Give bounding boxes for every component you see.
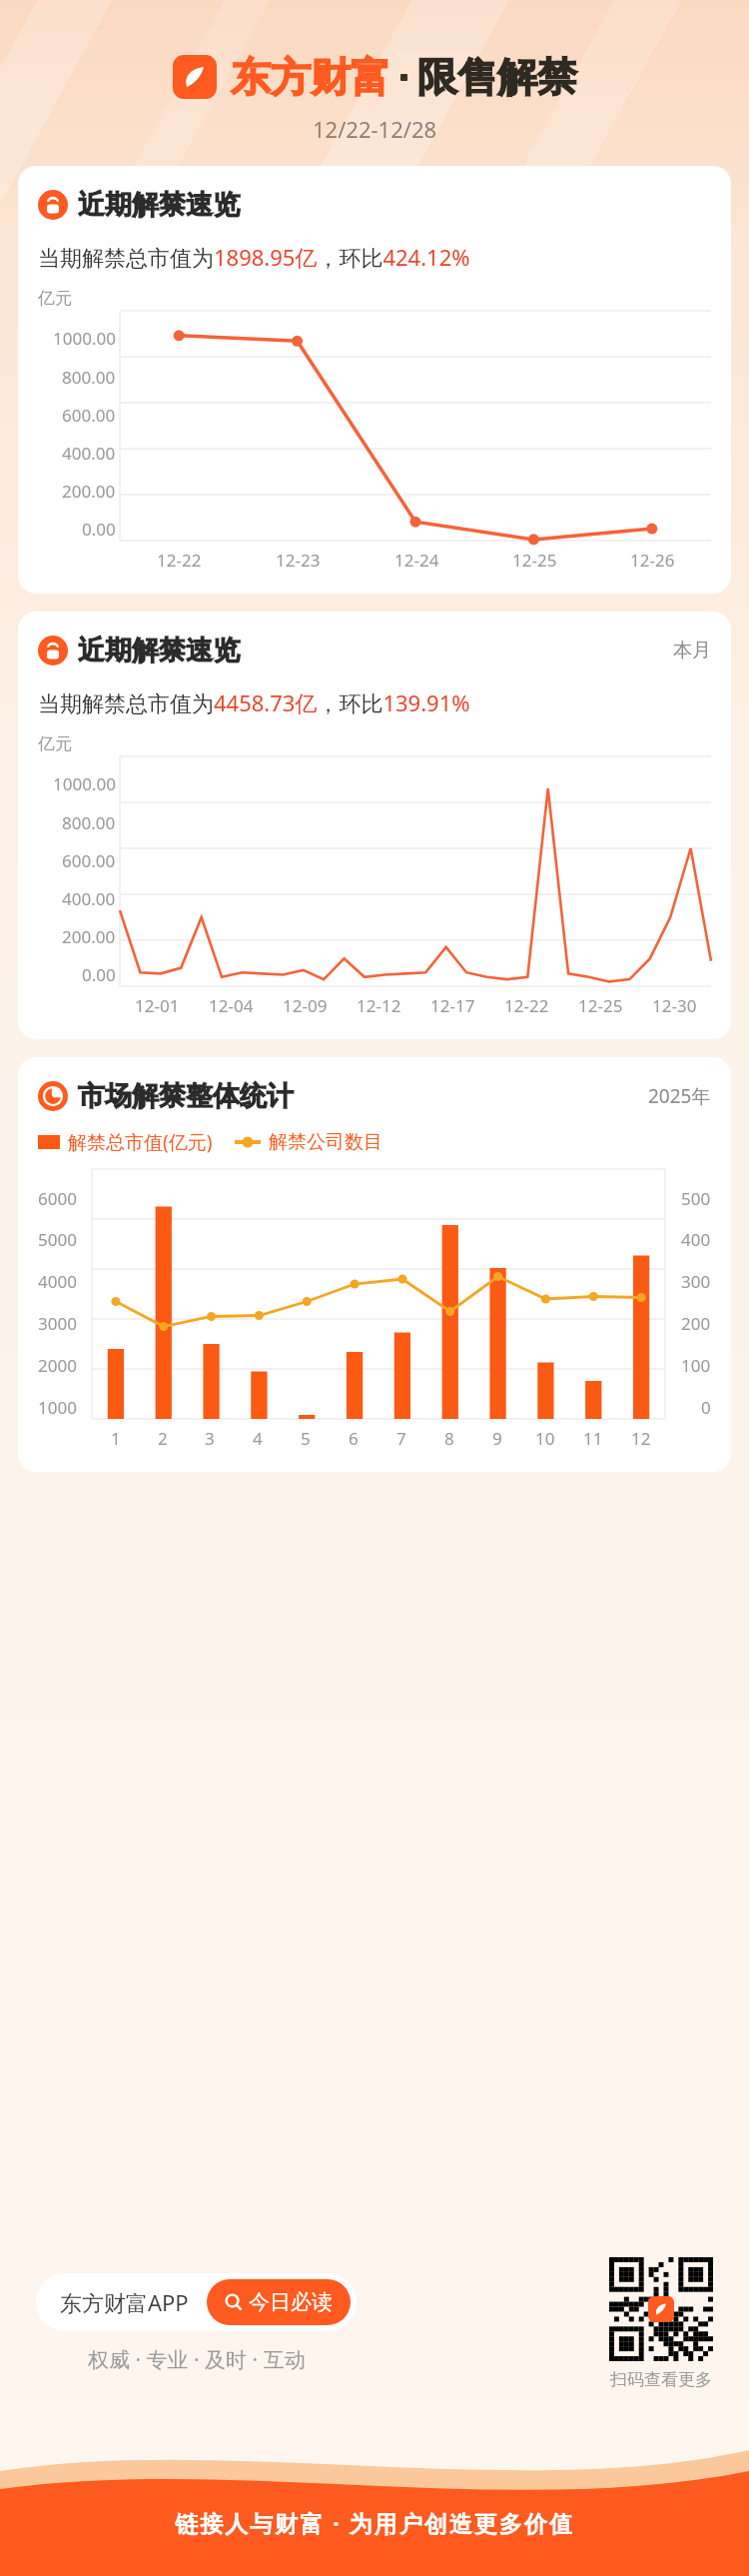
staticText: 12-25 (578, 994, 623, 1017)
staticText: 12-04 (209, 994, 254, 1017)
staticText: 8 (444, 1427, 454, 1450)
staticText: 近期解禁速览 (78, 188, 240, 222)
staticText: 0 (701, 1396, 711, 1419)
staticText: 400.00 (62, 887, 116, 910)
button[interactable]: 今日必读 (207, 2279, 351, 2325)
staticText: 800.00 (62, 366, 116, 389)
staticText: 12-25 (512, 549, 557, 572)
staticText: 7 (396, 1427, 406, 1450)
staticText: 600.00 (62, 404, 116, 427)
staticText: 11 (583, 1427, 603, 1450)
staticText: 12-22 (157, 549, 202, 572)
staticText: 1000 (38, 1396, 77, 1419)
button[interactable]: 东方财富APP (36, 2273, 357, 2331)
staticText: 近期解禁速览 (78, 634, 240, 667)
staticText: 2025年 (648, 1083, 711, 1109)
staticText: 2000 (38, 1354, 77, 1377)
staticText: 12-23 (276, 549, 321, 572)
staticText: 6000 (38, 1187, 77, 1210)
staticText: 12/22-12/28 (313, 114, 437, 144)
staticText: 200 (681, 1312, 711, 1335)
staticText: 12-22 (504, 994, 549, 1017)
staticText: 12-09 (283, 994, 328, 1017)
staticText: 亿元 (38, 733, 72, 754)
staticText: 0.00 (82, 518, 116, 541)
staticText: 200.00 (62, 480, 116, 503)
staticText: 200.00 (62, 925, 116, 948)
staticText: 800.00 (62, 811, 116, 834)
staticText: 4000 (38, 1270, 77, 1293)
staticText: 12-12 (357, 994, 401, 1017)
staticText: 1000.00 (53, 327, 116, 350)
staticText: 解禁公司数目 (269, 1130, 382, 1154)
button[interactable]: Scan QR code for more (609, 2257, 713, 2390)
staticText: 链接人与财富 · 为用户创造更多价值 (175, 2507, 574, 2538)
staticText: 4 (253, 1427, 263, 1450)
staticText: 12-26 (630, 549, 675, 572)
staticText: 亿元 (38, 288, 72, 309)
staticText: 10 (535, 1427, 555, 1450)
staticText: 9 (492, 1427, 502, 1450)
staticText: 本月 (673, 639, 711, 662)
staticText: 解禁总市值(亿元) (68, 1129, 213, 1155)
staticText: 1000.00 (53, 772, 116, 795)
staticText: 6 (349, 1427, 359, 1450)
staticText: 市场解禁整体统计 (78, 1079, 294, 1113)
staticText: 12-24 (394, 549, 439, 572)
staticText: 当期解禁总市值为1898.95亿，环比424.12% (38, 242, 470, 272)
staticText: 12-17 (430, 994, 475, 1017)
staticText: 限售解禁 (417, 52, 577, 102)
staticText: 5 (301, 1427, 311, 1450)
staticText: 600.00 (62, 849, 116, 872)
staticText: 东方财富APP (60, 2287, 189, 2317)
staticText: 0.00 (82, 963, 116, 986)
staticText: 12-30 (652, 994, 697, 1017)
staticText: 400 (681, 1228, 711, 1251)
staticText: 500 (681, 1187, 711, 1210)
staticText: 3 (205, 1427, 215, 1450)
staticText: 12 (631, 1427, 651, 1450)
staticText: 扫码查看更多 (610, 2369, 712, 2390)
staticText: 当期解禁总市值为4458.73亿，环比139.91% (38, 687, 470, 717)
staticText: 2 (158, 1427, 168, 1450)
staticText: 300 (681, 1270, 711, 1293)
staticText: 1 (111, 1427, 121, 1450)
staticText: 今日必读 (249, 2289, 333, 2315)
staticText: 100 (681, 1354, 711, 1377)
staticText: 3000 (38, 1312, 77, 1335)
staticText: 东方财富 (231, 52, 390, 102)
staticText: 5000 (38, 1228, 77, 1251)
staticText: 权威 · 专业 · 及时 · 互动 (88, 2345, 306, 2374)
staticText: 12-01 (135, 994, 180, 1017)
staticText: 400.00 (62, 442, 116, 465)
